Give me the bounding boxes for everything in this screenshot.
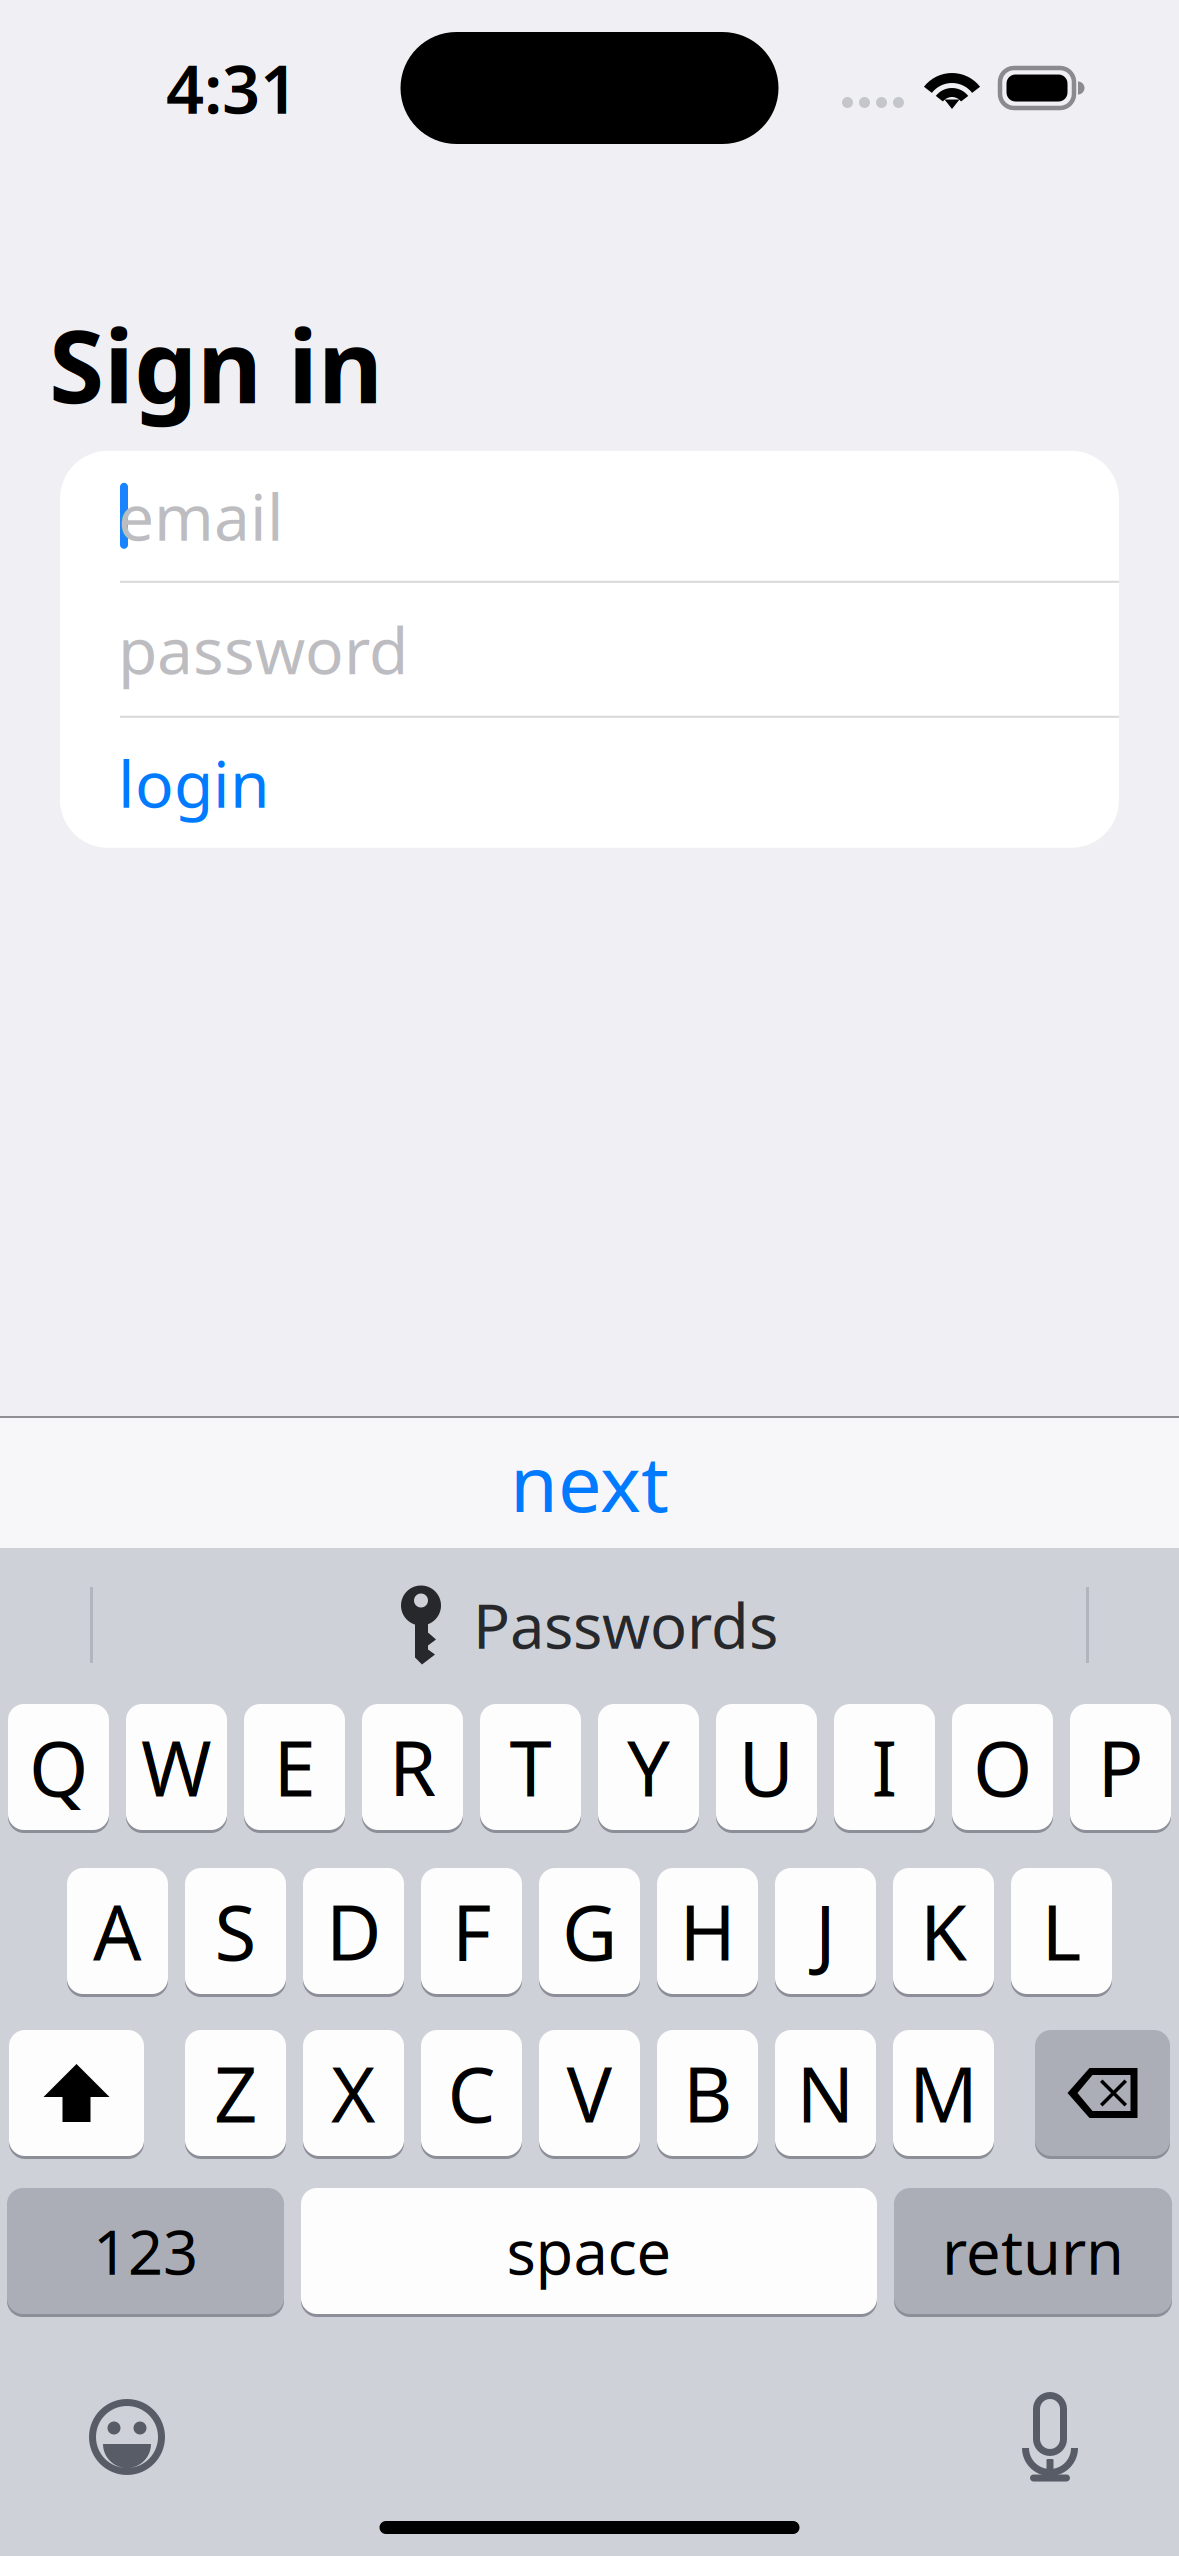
staticText: Y: [627, 1716, 670, 1817]
staticText: D: [326, 1880, 381, 1981]
button[interactable]: D: [303, 1866, 404, 1996]
button[interactable]: T: [480, 1702, 581, 1832]
staticText: A: [93, 1880, 142, 1981]
staticText: I: [871, 1716, 897, 1817]
staticText: return: [942, 2210, 1124, 2292]
staticText: Passwords: [473, 1584, 778, 1666]
button[interactable]: O: [952, 1702, 1053, 1832]
staticText: H: [679, 1880, 735, 1981]
button[interactable]: V: [539, 2028, 640, 2158]
button[interactable]: Dictate: [1022, 2394, 1078, 2480]
staticText: K: [920, 1880, 967, 1981]
staticText: U: [738, 1716, 794, 1817]
staticText: login: [118, 740, 270, 825]
button[interactable]: Delete: [1035, 2028, 1170, 2158]
staticText: Sign in: [49, 298, 383, 431]
staticText: T: [509, 1716, 551, 1817]
button[interactable]: E: [244, 1702, 345, 1832]
button[interactable]: G: [539, 1866, 640, 1996]
staticText: S: [214, 1880, 256, 1981]
button[interactable]: N: [775, 2028, 876, 2158]
button[interactable]: R: [362, 1702, 463, 1832]
button[interactable]: login: [60, 718, 1119, 848]
button[interactable]: next: [0, 1416, 1179, 1548]
staticText: email: [118, 473, 284, 558]
staticText: B: [683, 2042, 732, 2143]
button[interactable]: H: [657, 1866, 758, 1996]
button[interactable]: S: [185, 1866, 286, 1996]
button[interactable]: F: [421, 1866, 522, 1996]
staticText: F: [452, 1880, 491, 1981]
button[interactable]: X: [303, 2028, 404, 2158]
button[interactable]: C: [421, 2028, 522, 2158]
button[interactable]: Z: [185, 2028, 286, 2158]
button[interactable]: U: [716, 1702, 817, 1832]
button[interactable]: Shift: [9, 2028, 144, 2158]
staticText: W: [141, 1716, 212, 1817]
staticText: X: [331, 2042, 376, 2143]
button[interactable]: I: [834, 1702, 935, 1832]
staticText: P: [1097, 1716, 1143, 1817]
button[interactable]: P: [1070, 1702, 1171, 1832]
staticText: R: [389, 1716, 436, 1817]
staticText: 4:31: [166, 44, 298, 132]
staticText: V: [566, 2042, 612, 2143]
button[interactable]: space: [301, 2186, 877, 2316]
button[interactable]: A: [67, 1866, 168, 1996]
staticText: E: [273, 1716, 315, 1817]
button[interactable]: L: [1011, 1866, 1112, 1996]
button[interactable]: Q: [8, 1702, 109, 1832]
staticText: L: [1041, 1880, 1081, 1981]
button[interactable]: 123: [7, 2186, 284, 2316]
staticText: G: [562, 1880, 617, 1981]
staticText: Z: [214, 2042, 257, 2143]
staticText: Q: [29, 1716, 88, 1817]
staticText: N: [796, 2042, 854, 2143]
staticText: O: [973, 1716, 1032, 1817]
button[interactable]: K: [893, 1866, 994, 1996]
button[interactable]: W: [126, 1702, 227, 1832]
staticText: J: [815, 1880, 836, 1981]
button[interactable]: Y: [598, 1702, 699, 1832]
staticText: space: [506, 2210, 671, 2292]
staticText: password: [118, 607, 408, 692]
button[interactable]: return: [894, 2186, 1172, 2316]
button[interactable]: Emoji: [87, 2397, 167, 2477]
staticText: next: [510, 1431, 669, 1533]
button[interactable]: B: [657, 2028, 758, 2158]
staticText: M: [909, 2042, 978, 2143]
staticText: 123: [93, 2210, 198, 2292]
button[interactable]: Passwords: [401, 1584, 778, 1666]
button[interactable]: M: [893, 2028, 994, 2158]
button[interactable]: J: [775, 1866, 876, 1996]
staticText: C: [447, 2042, 495, 2143]
